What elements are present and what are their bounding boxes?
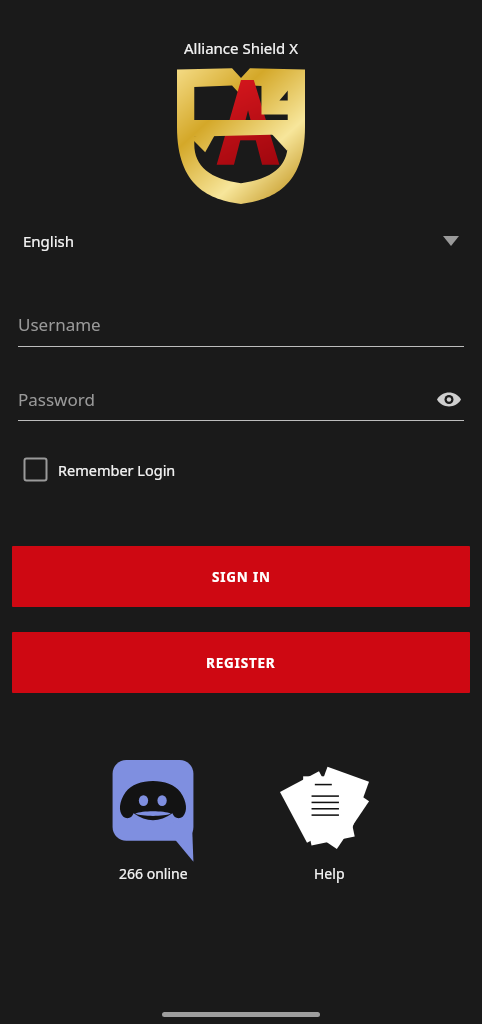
staticText: Help: [314, 864, 345, 883]
staticText: 266 online: [119, 864, 188, 883]
button[interactable]: Password: [18, 384, 464, 421]
staticText: Password: [18, 388, 95, 411]
staticText: REGISTER: [206, 654, 276, 672]
staticText: Remember Login: [58, 460, 176, 480]
button[interactable]: SIGN IN: [12, 546, 470, 607]
button[interactable]: Show password: [434, 384, 464, 414]
staticText: SIGN IN: [212, 568, 271, 586]
button[interactable]: REGISTER: [12, 632, 470, 693]
button[interactable]: Help: [272, 756, 386, 887]
button[interactable]: English: [0, 218, 482, 264]
staticText: English: [23, 231, 75, 251]
staticText: Username: [18, 313, 101, 336]
button[interactable]: Discord, 266 online: [96, 756, 210, 887]
staticText: Alliance Shield X: [0, 38, 482, 58]
button[interactable]: Username: [18, 313, 464, 347]
button[interactable]: Remember Login: [18, 451, 181, 488]
